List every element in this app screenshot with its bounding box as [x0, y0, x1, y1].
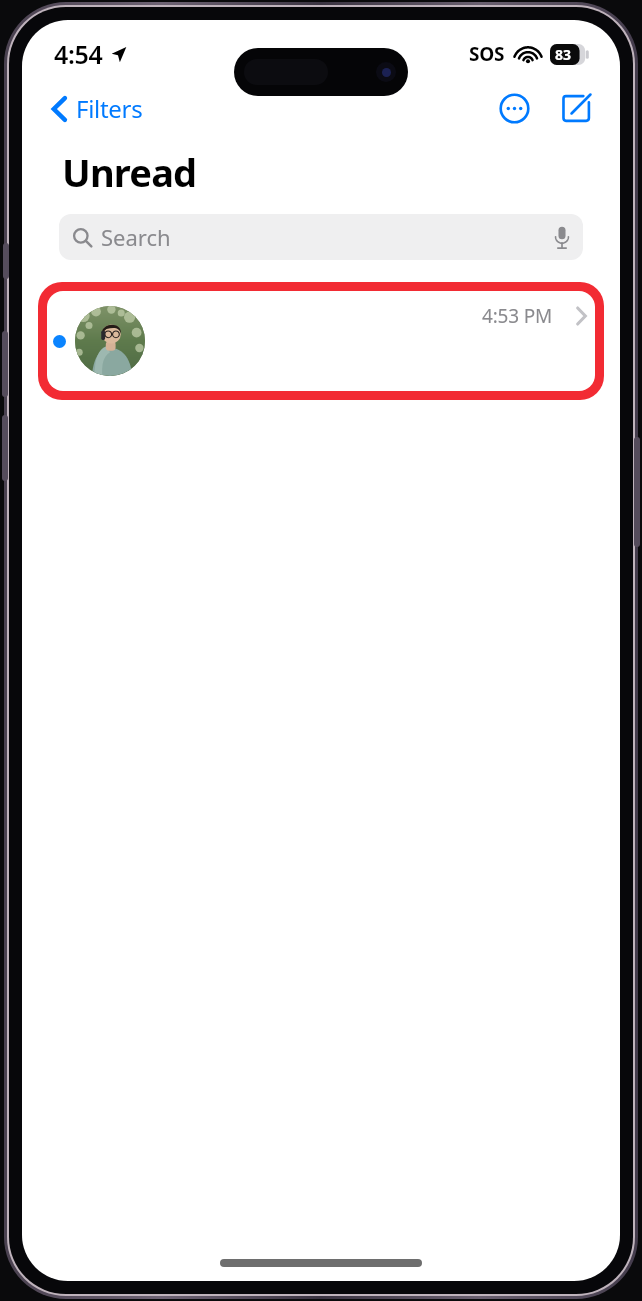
other: Volume down [2, 415, 8, 481]
staticText: 4:54 [54, 37, 103, 71]
button[interactable]: Search [59, 214, 583, 260]
staticText: 4:53 PM [482, 303, 574, 329]
button[interactable]: New message [554, 86, 598, 130]
staticText: Search [101, 222, 171, 252]
button[interactable]: Rhett [47, 291, 595, 391]
staticText: Unread [62, 146, 197, 198]
staticText: SOS [469, 41, 505, 67]
staticText: Filters [76, 92, 143, 125]
button[interactable]: More options [492, 86, 536, 130]
button[interactable]: Filters [44, 86, 151, 131]
other: Ring silent switch [3, 243, 9, 279]
other: Side button [634, 437, 640, 547]
other: Volume up [2, 331, 8, 397]
staticText: 83 [555, 45, 572, 64]
